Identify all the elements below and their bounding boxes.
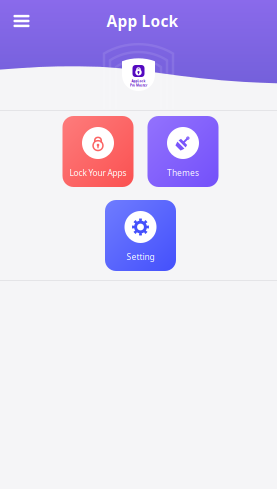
staticText: App Lock <box>106 10 178 32</box>
button[interactable]: Setting <box>105 200 176 271</box>
button[interactable]: Lock Your Apps <box>62 116 133 187</box>
staticText: Themes <box>167 167 199 178</box>
staticText: Setting <box>126 251 154 262</box>
staticText: Lock Your Apps <box>69 167 126 178</box>
button[interactable]: Themes <box>147 116 218 187</box>
staticText: AppLock <box>131 79 145 83</box>
button[interactable]: Menu <box>7 7 35 35</box>
staticText: Pro Master <box>130 83 147 87</box>
